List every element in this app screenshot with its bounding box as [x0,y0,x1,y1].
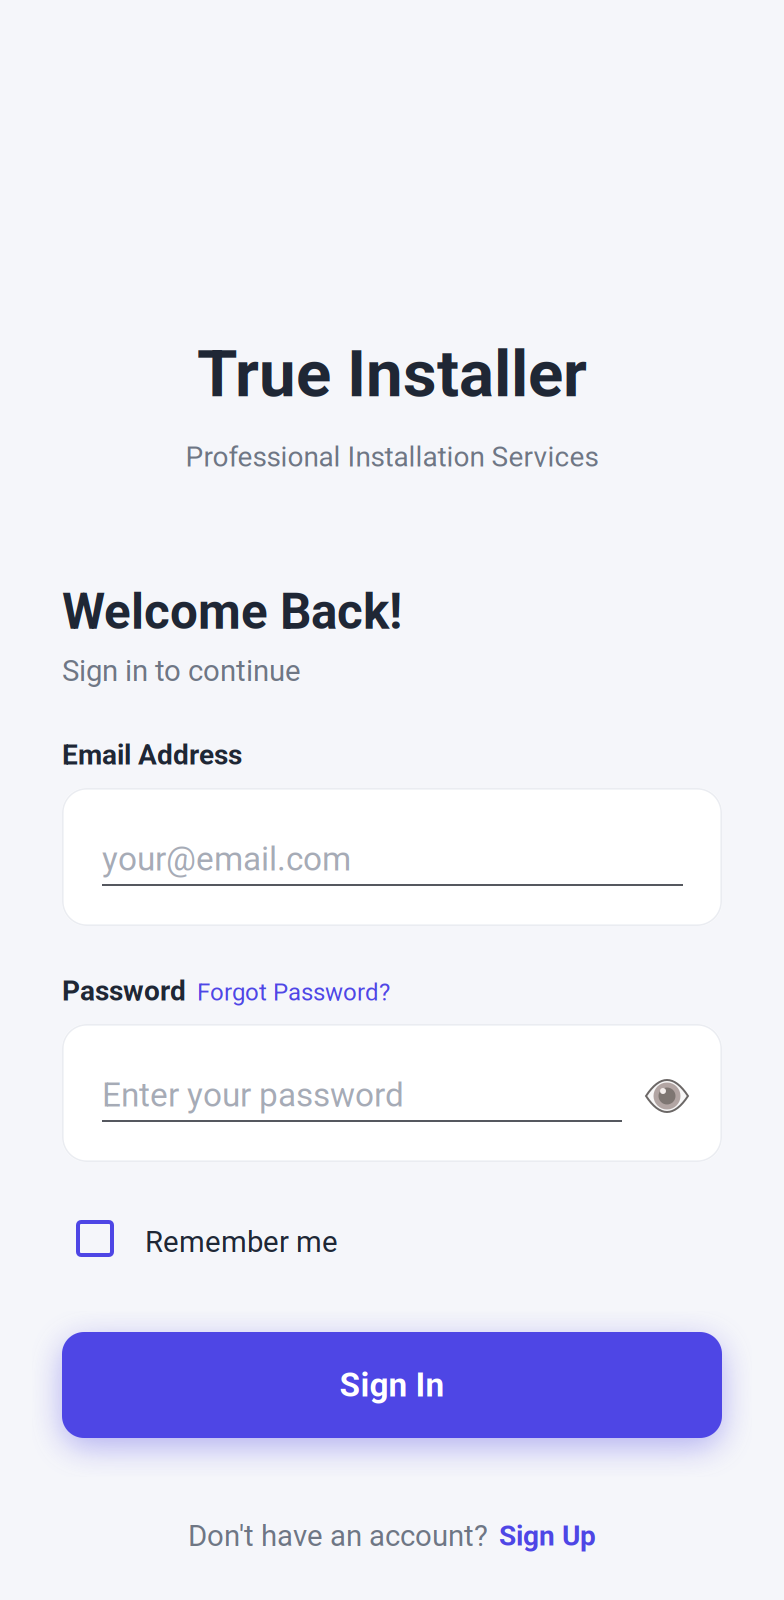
button[interactable]: Show password [636,1065,698,1127]
staticText: Enter your password [102,1075,404,1115]
staticText: Professional Installation Services [185,441,598,473]
staticText: Email Address [62,739,242,771]
staticText: True Installer [197,336,587,412]
staticText: Remember me [145,1225,338,1259]
button[interactable]: Remember me [62,1210,722,1272]
staticText: Sign in to continue [62,654,301,688]
button[interactable]: Forgot Password? [197,978,390,1006]
staticText: Password [62,975,186,1007]
button[interactable]: Sign Up [499,1520,596,1552]
button[interactable]: Sign In [62,1332,722,1438]
staticText: Don't have an account? [188,1519,488,1553]
staticText: Welcome Back! [62,583,402,641]
staticText: Sign Up [499,1520,596,1552]
staticText: your@email.com [102,839,351,879]
staticText: Forgot Password? [197,978,390,1006]
staticText: Sign In [339,1365,444,1405]
